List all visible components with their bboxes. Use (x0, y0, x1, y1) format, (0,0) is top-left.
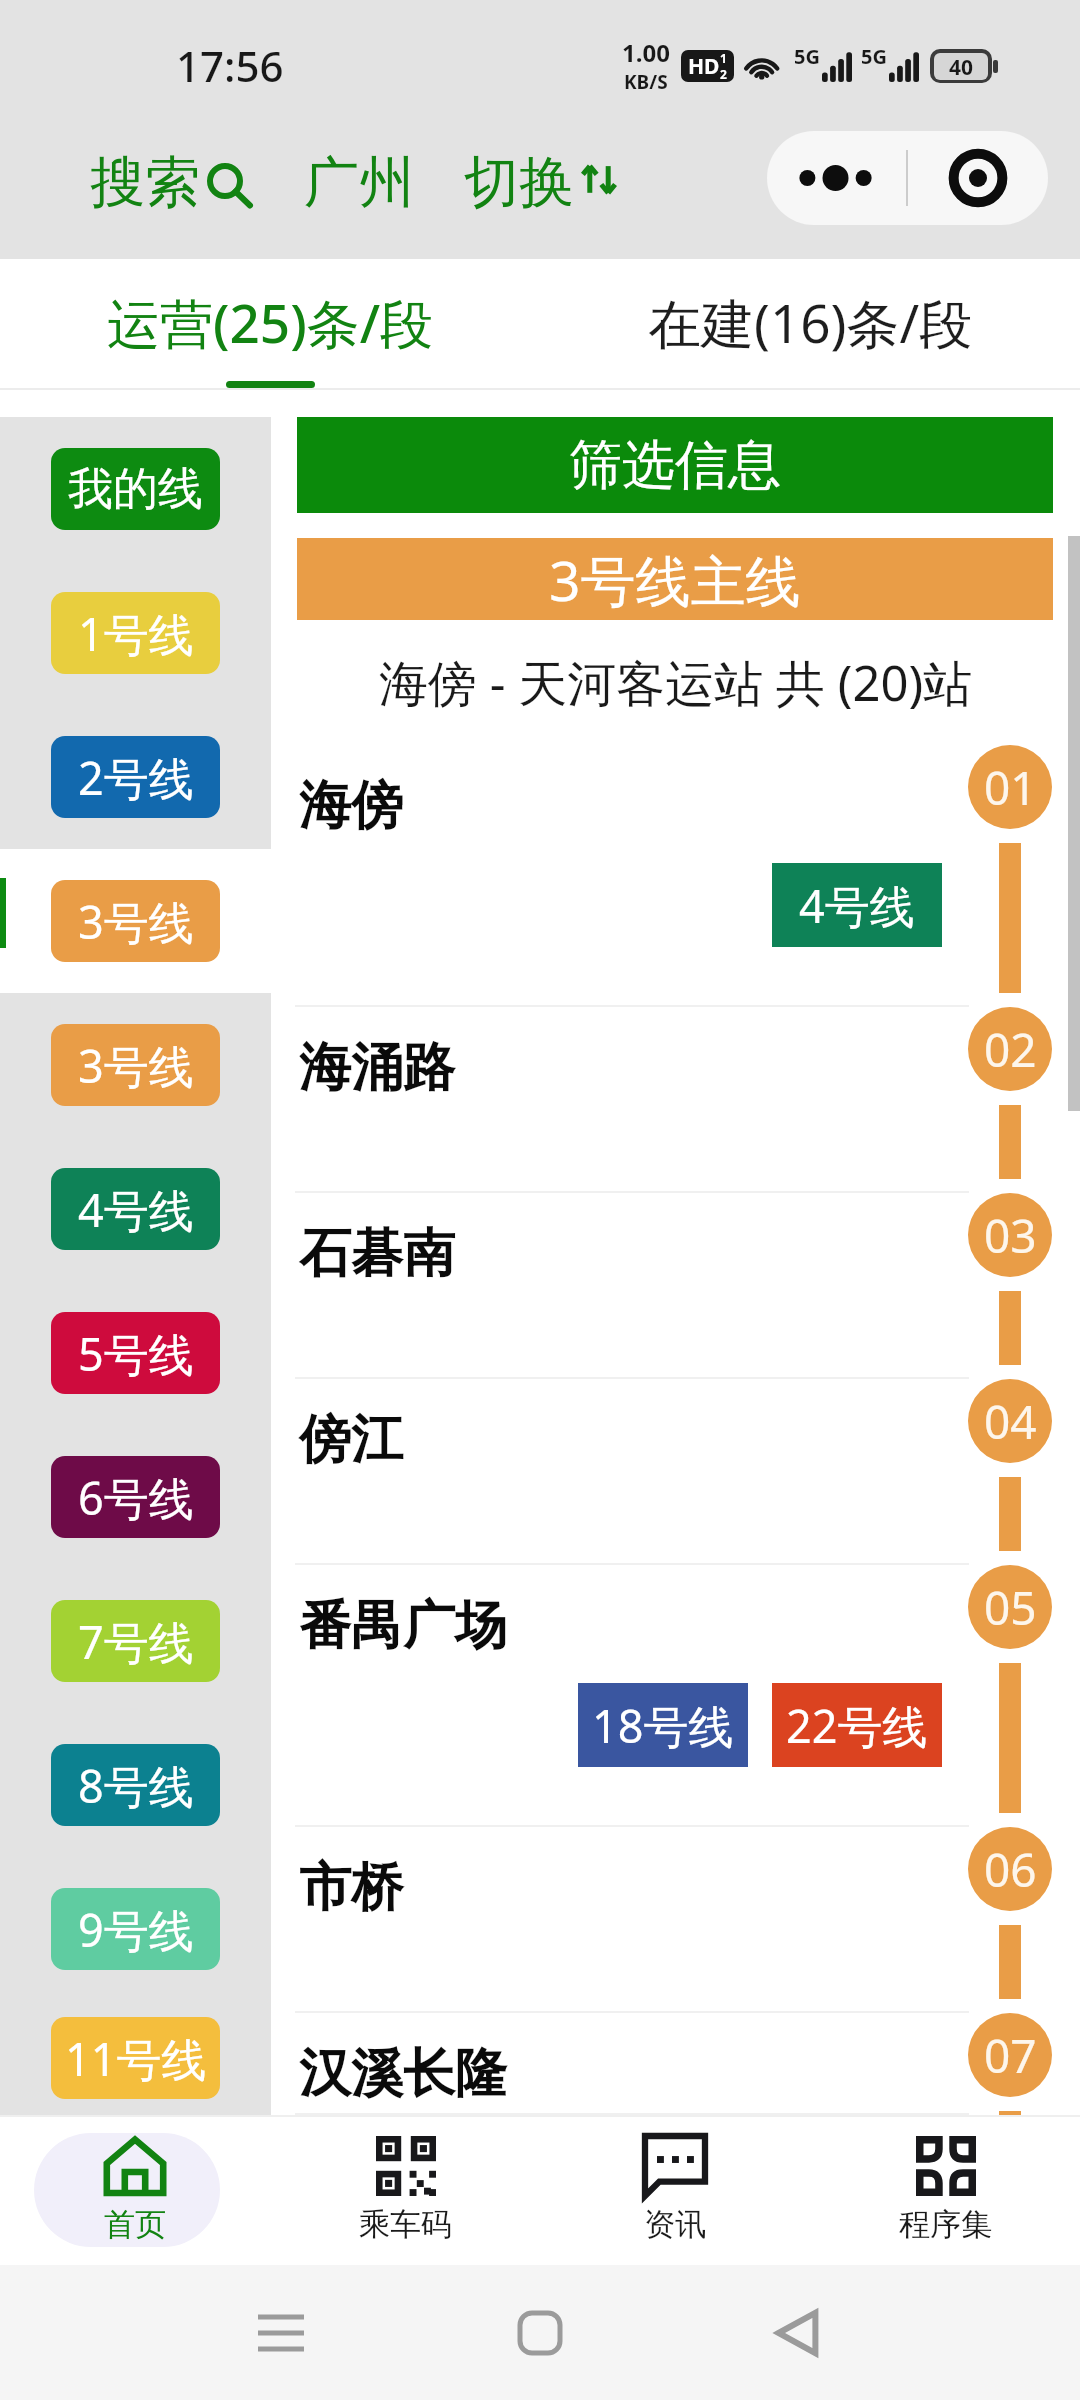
button[interactable]: 市桥 (271, 1827, 1080, 2013)
staticText: 筛选信息 (569, 432, 781, 499)
button[interactable]: 海傍 (271, 745, 1080, 1007)
staticText: 5G (861, 43, 887, 70)
staticText: 06 (984, 1838, 1037, 1901)
button[interactable]: 傍江 (271, 1379, 1080, 1565)
staticText: 6号线 (78, 1467, 194, 1528)
button[interactable]: Back (722, 2265, 872, 2400)
button[interactable]: 筛选信息 (297, 417, 1053, 513)
button[interactable]: 广州 (304, 148, 414, 217)
staticText: 4号线 (799, 875, 915, 936)
staticText: 40 (949, 53, 974, 80)
staticText: 程序集 (899, 2205, 992, 2244)
staticText: 04 (984, 1390, 1037, 1453)
staticText: 8号线 (78, 1755, 194, 1816)
staticText: 我的线 (68, 461, 203, 518)
staticText: 海傍 (299, 773, 403, 839)
staticText: 番禺广场 (299, 1593, 507, 1659)
button[interactable]: Recent apps (206, 2265, 356, 2400)
staticText: 2号线 (78, 747, 194, 808)
staticText: 01 (984, 756, 1037, 819)
staticText: 搜索 (90, 148, 200, 217)
button[interactable]: 18号线 (578, 1683, 748, 1767)
staticText: 石碁南 (299, 1221, 455, 1287)
staticText: 18号线 (592, 1695, 734, 1756)
button[interactable]: 海涌路 (271, 1007, 1080, 1193)
staticText: 17:56 (176, 37, 284, 94)
button[interactable]: 22号线 (772, 1683, 942, 1767)
button[interactable]: 乘车码 (312, 2133, 498, 2247)
staticText: 03 (984, 1204, 1037, 1267)
button[interactable]: 石碁南 (271, 1193, 1080, 1379)
button[interactable]: 程序集 (852, 2133, 1038, 2247)
staticText: 1号线 (78, 603, 194, 664)
staticText: 傍江 (299, 1407, 403, 1473)
button[interactable]: 3号线 (0, 993, 271, 1137)
staticText: 切换 (464, 148, 574, 217)
button[interactable]: 搜索 (90, 148, 254, 217)
button[interactable]: 8号线 (0, 1713, 271, 1857)
staticText: 乘车码 (359, 2205, 452, 2244)
staticText: HD (688, 52, 720, 81)
button[interactable]: Home (465, 2265, 615, 2400)
button[interactable]: More options (767, 131, 906, 225)
staticText: 3号线 (78, 891, 194, 952)
staticText: 02 (984, 1018, 1037, 1081)
staticText: 1 (720, 50, 727, 66)
staticText: 7号线 (78, 1611, 194, 1672)
button[interactable]: 9号线 (0, 1857, 271, 2001)
staticText: 市桥 (299, 1855, 403, 1921)
button[interactable]: 切换 (464, 148, 622, 217)
button[interactable]: Close mini program (908, 131, 1048, 225)
button[interactable]: 在建(16)条/段 (540, 259, 1080, 390)
staticText: 1.00 (622, 36, 670, 69)
staticText: 海涌路 (299, 1035, 455, 1101)
button[interactable]: 我的线 (0, 417, 271, 561)
button[interactable]: 5号线 (0, 1281, 271, 1425)
button[interactable]: 汉溪长隆 (271, 2013, 1080, 2115)
button[interactable]: 1号线 (0, 561, 271, 705)
staticText: 4号线 (78, 1179, 194, 1240)
staticText: 3号线 (78, 1035, 194, 1096)
button[interactable]: 7号线 (0, 1569, 271, 1713)
staticText: 运营(25)条/段 (107, 286, 434, 358)
button[interactable]: 资讯 (582, 2133, 768, 2247)
staticText: 05 (984, 1576, 1037, 1639)
staticText: 5G (794, 43, 820, 70)
button[interactable]: 11号线 (0, 2001, 271, 2115)
button[interactable]: 6号线 (0, 1425, 271, 1569)
staticText: 5号线 (78, 1323, 194, 1384)
button[interactable]: 首页 (42, 2133, 228, 2247)
staticText: 07 (984, 2024, 1037, 2087)
button[interactable]: 番禺广场 (271, 1565, 1080, 1827)
staticText: KB/S (624, 69, 668, 95)
button[interactable]: 2号线 (0, 705, 271, 849)
button[interactable]: 4号线 (772, 863, 942, 947)
staticText: 11号线 (65, 2028, 207, 2089)
staticText: 9号线 (78, 1899, 194, 1960)
button[interactable]: 4号线 (0, 1137, 271, 1281)
button[interactable]: 3号线 (0, 849, 271, 993)
staticText: 资讯 (644, 2205, 706, 2244)
button[interactable]: 运营(25)条/段 (0, 259, 540, 390)
staticText: 22号线 (786, 1695, 928, 1756)
staticText: 3号线主线 (549, 542, 801, 617)
staticText: 2 (720, 66, 727, 82)
staticText: 在建(16)条/段 (648, 286, 973, 358)
staticText: 首页 (104, 2205, 166, 2244)
staticText: 广州 (304, 148, 414, 217)
staticText: 海傍 - 天河客运站 共 (20)站 (379, 649, 973, 716)
staticText: 汉溪长隆 (299, 2041, 507, 2107)
button[interactable]: 3号线主线 (297, 538, 1053, 620)
